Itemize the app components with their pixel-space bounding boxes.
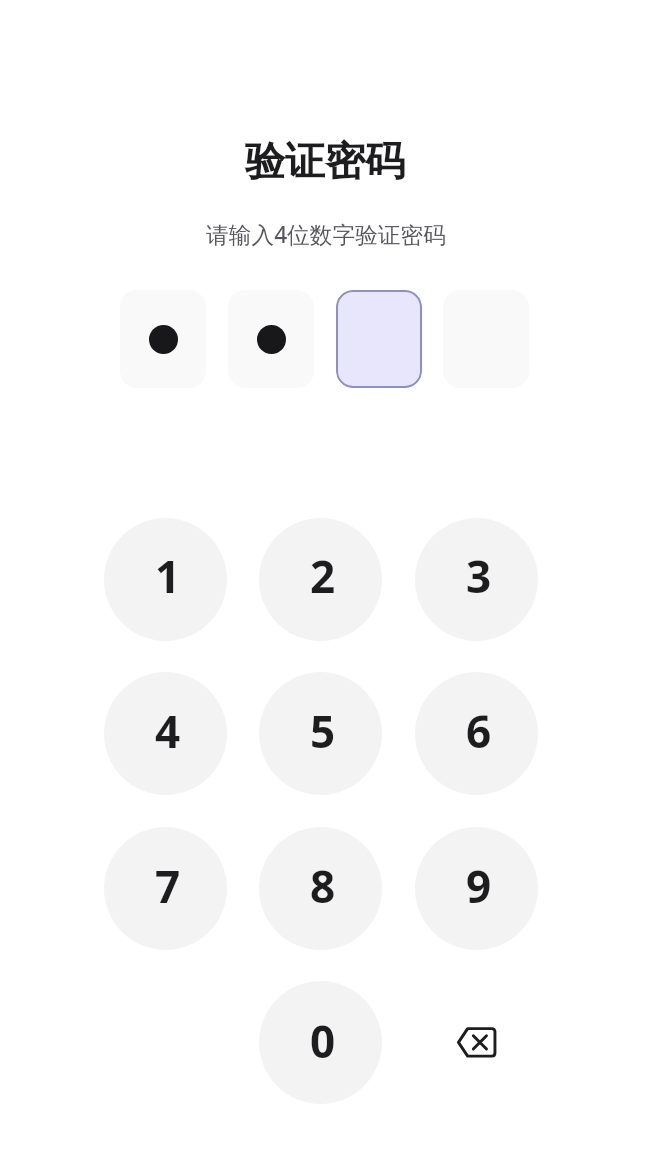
button[interactable]: 7 [104,827,227,950]
button[interactable]: 3 [415,518,538,641]
button[interactable]: 2 [259,518,382,641]
staticText: 6 [466,701,492,761]
button[interactable]: 4 [104,672,227,795]
button[interactable]: Backspace [415,981,538,1104]
button[interactable]: 6 [415,672,538,795]
staticText: 验证密码 [245,136,405,186]
staticText: 0 [310,1011,336,1071]
button[interactable]: 9 [415,827,538,950]
staticText: 2 [310,546,336,606]
staticText: 5 [310,701,336,761]
button[interactable]: 5 [259,672,382,795]
button[interactable]: 8 [259,827,382,950]
staticText: 4 [155,701,181,761]
staticText: 3 [466,546,492,606]
button[interactable] [228,290,314,388]
button[interactable]: 1 [104,518,227,641]
staticText: 8 [310,856,336,916]
staticText: 请输入4位数字验证密码 [206,219,446,250]
button[interactable] [120,290,206,388]
staticText: 9 [466,856,492,916]
button[interactable]: 0 [259,981,382,1104]
button[interactable] [336,290,422,388]
staticText: 1 [155,546,181,606]
staticText: 7 [155,856,181,916]
